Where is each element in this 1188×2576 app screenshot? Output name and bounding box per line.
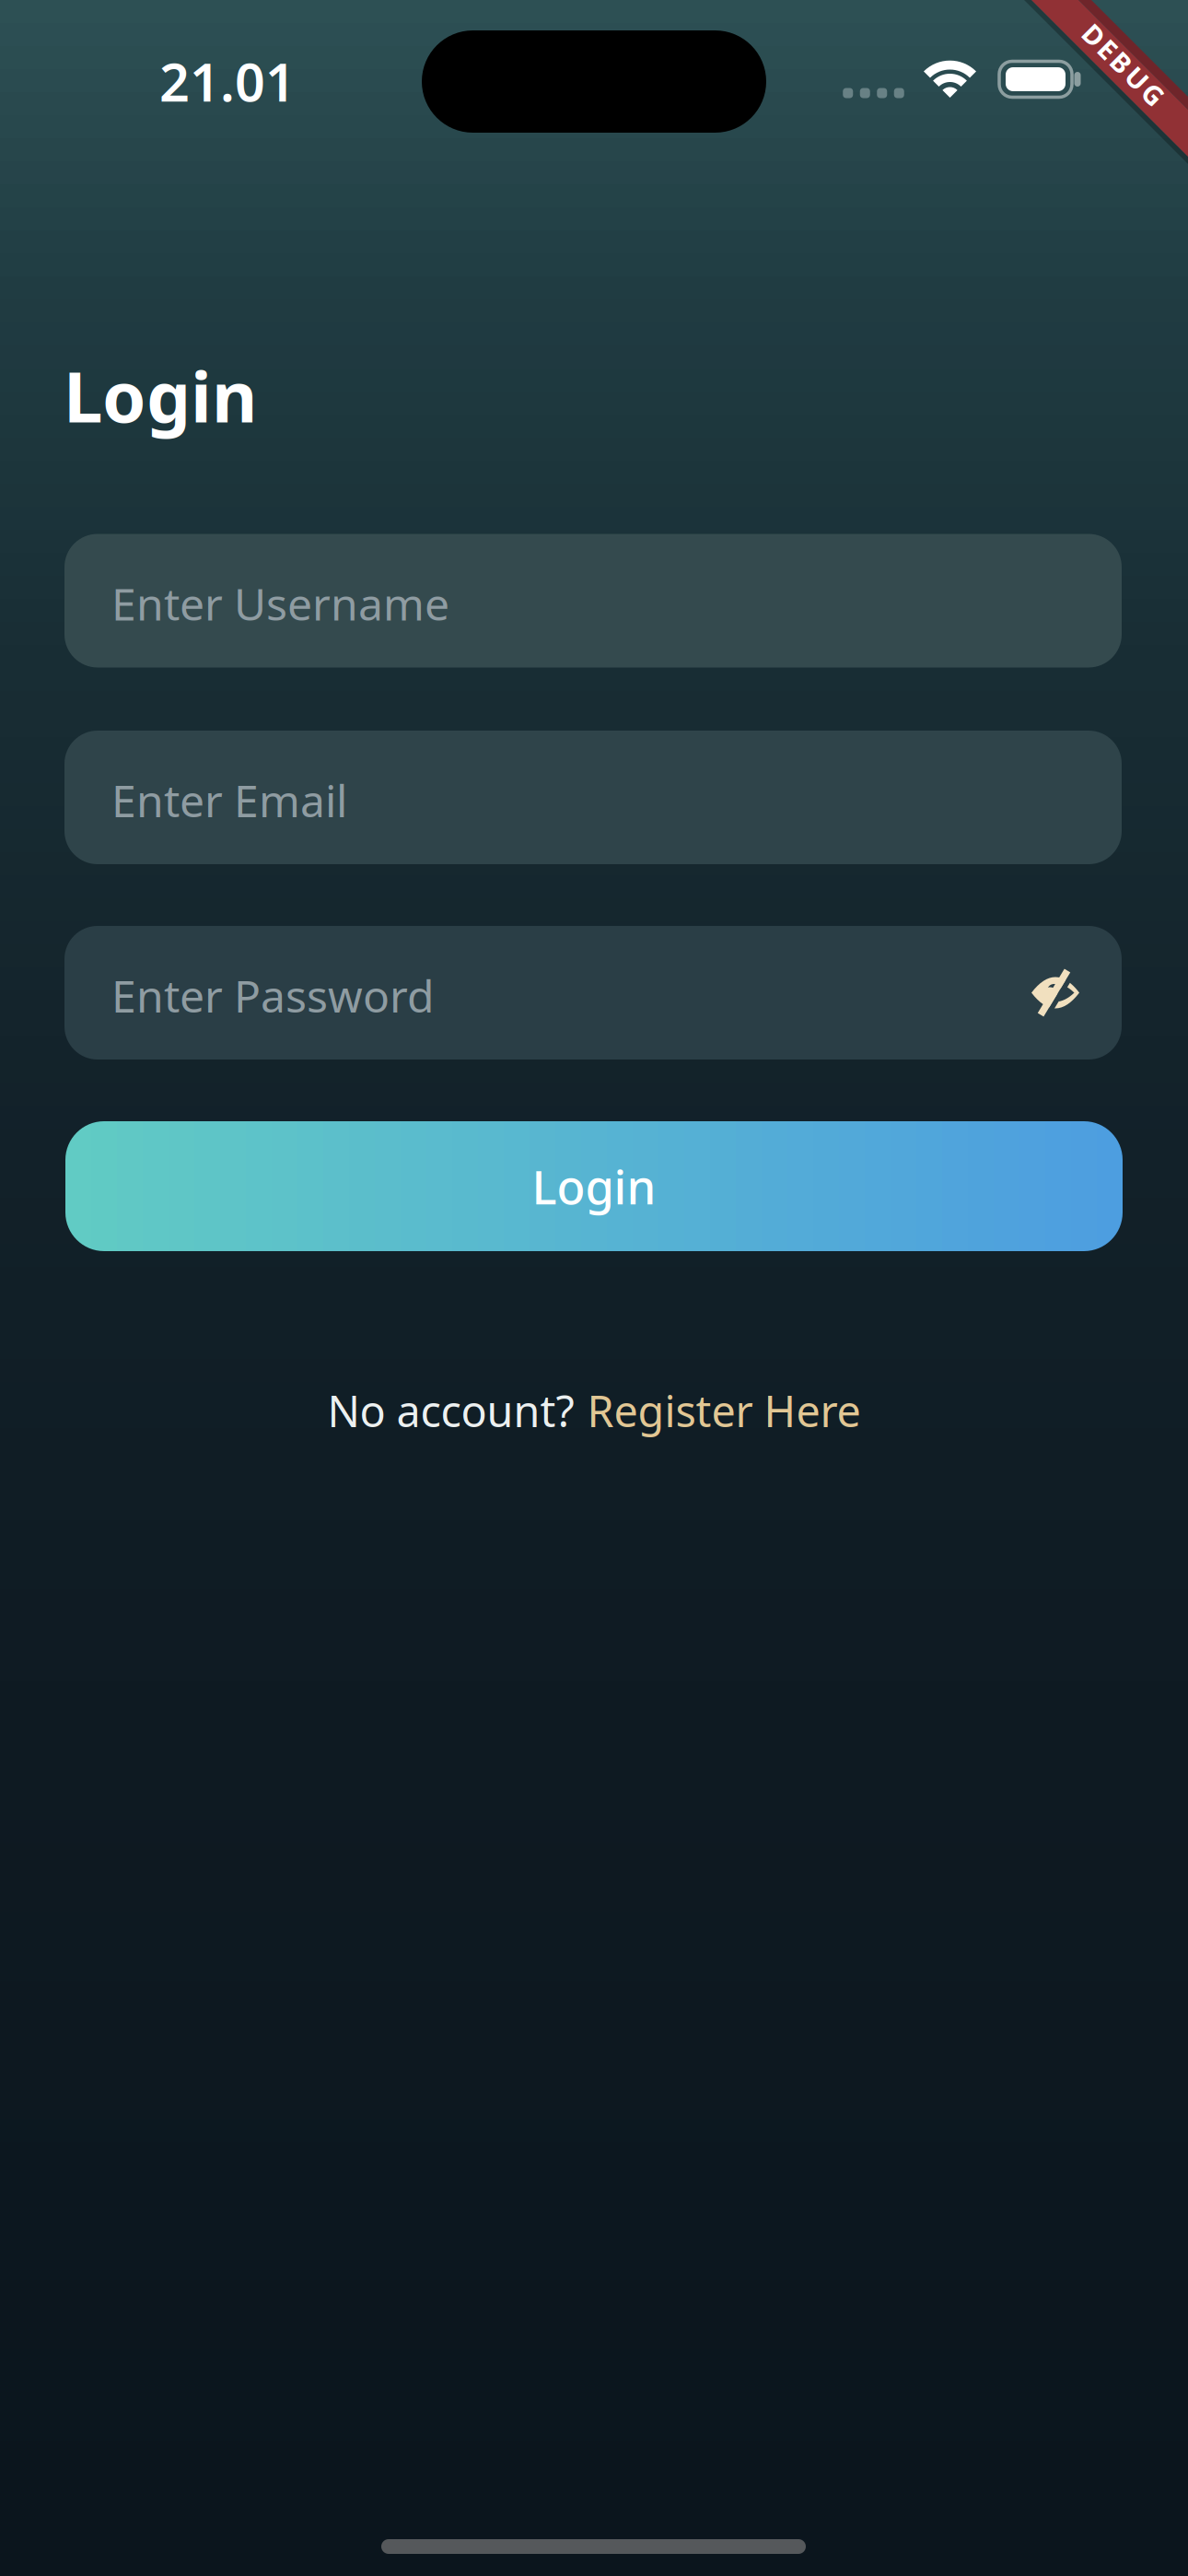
button[interactable]: Enter Email	[64, 731, 1122, 864]
staticText: Login	[64, 349, 257, 442]
button[interactable]: Enter Password	[64, 926, 1122, 1060]
staticText: Login	[532, 1155, 656, 1217]
staticText: DEBUG	[1072, 47, 1175, 82]
staticText: Register Here	[587, 1382, 861, 1439]
staticText: Enter Password	[111, 966, 435, 1025]
staticText: No account?	[327, 1382, 574, 1439]
staticText: Enter Username	[111, 574, 449, 633]
button[interactable]: Login	[65, 1121, 1123, 1251]
button[interactable]: Enter Username	[64, 534, 1122, 667]
staticText: 21.01	[159, 46, 296, 116]
staticText: Enter Email	[111, 771, 347, 829]
button[interactable]: Register Here	[587, 1382, 861, 1439]
